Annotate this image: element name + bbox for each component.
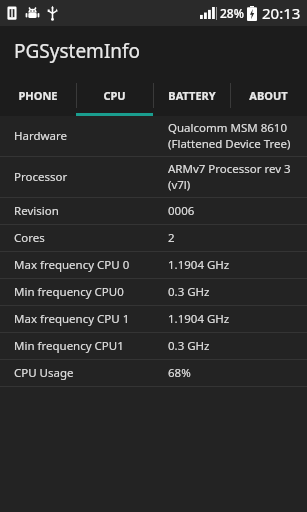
staticText: (v7l) <box>168 177 191 193</box>
button[interactable]: Max frequency CPU 0 <box>0 252 307 278</box>
staticText: Hardware <box>14 128 168 144</box>
staticText: 20:13 <box>262 3 301 23</box>
staticText: PGSystemInfo <box>14 38 141 64</box>
staticText: 68% <box>168 365 191 381</box>
staticText: Processor <box>14 169 168 185</box>
staticText: 1.1904 GHz <box>168 311 230 327</box>
staticText: PHONE <box>18 88 58 103</box>
button[interactable]: Processor <box>0 157 307 197</box>
button[interactable]: Min frequency CPU0 <box>0 279 307 305</box>
staticText: ARMv7 Processor rev 3 <box>168 161 291 177</box>
staticText: 0.3 GHz <box>168 284 210 300</box>
staticText: 2 <box>168 230 175 246</box>
button[interactable]: Min frequency CPU1 <box>0 333 307 359</box>
staticText: 1.1904 GHz <box>168 257 230 273</box>
button[interactable]: CPU Usage <box>0 360 307 386</box>
button[interactable]: BATTERY <box>153 75 230 116</box>
staticText: Max frequency CPU 0 <box>14 257 168 273</box>
button[interactable]: PHONE <box>0 75 76 116</box>
staticText: CPU Usage <box>14 365 168 381</box>
staticText: 0.3 GHz <box>168 338 210 354</box>
button[interactable]: CPU <box>76 75 153 116</box>
staticText: Cores <box>14 230 168 246</box>
staticText: Qualcomm MSM 8610 <box>168 120 287 136</box>
staticText: BATTERY <box>168 88 216 103</box>
button[interactable]: Max frequency CPU 1 <box>0 306 307 332</box>
staticText: Max frequency CPU 1 <box>14 311 168 327</box>
staticText: 28% <box>220 5 244 21</box>
staticText: Min frequency CPU1 <box>14 338 168 354</box>
staticText: Revision <box>14 203 168 219</box>
staticText: (Flattened Device Tree) <box>168 136 291 152</box>
staticText: CPU <box>103 88 126 103</box>
button[interactable]: Hardware <box>0 116 307 156</box>
staticText: ABOUT <box>249 88 288 103</box>
staticText: 0006 <box>168 203 195 219</box>
button[interactable]: Cores <box>0 225 307 251</box>
staticText: Min frequency CPU0 <box>14 284 168 300</box>
button[interactable]: Revision <box>0 198 307 224</box>
button[interactable]: ABOUT <box>230 75 307 116</box>
